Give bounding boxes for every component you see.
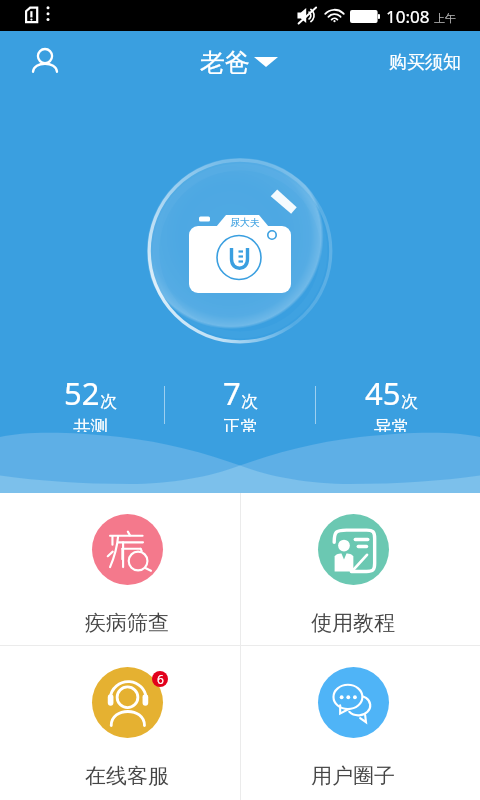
button[interactable]: 疾病筛查 — [67, 496, 187, 646]
staticText: 次 — [401, 391, 418, 412]
button[interactable]: 使用教程 — [293, 496, 413, 646]
staticText: 共测 — [73, 416, 108, 432]
staticText: 异常 — [374, 416, 409, 432]
staticText: 10:08 — [386, 5, 430, 28]
staticText: 老爸 — [200, 47, 250, 78]
button[interactable]: Start measurement — [147, 158, 333, 344]
staticText: 7 — [223, 372, 241, 414]
staticText: 次 — [100, 391, 117, 412]
staticText: 在线客服 — [85, 763, 169, 789]
button[interactable]: 用户圈子 — [293, 649, 413, 799]
staticText: 购买须知 — [389, 51, 461, 74]
staticText: 52 — [64, 372, 100, 414]
button[interactable]: 老爸 — [200, 44, 278, 80]
staticText: 次 — [241, 391, 258, 412]
button[interactable]: 6 — [67, 649, 187, 799]
button[interactable]: 购买须知 — [381, 46, 469, 79]
staticText: 上午 — [434, 11, 456, 25]
staticText: 用户圈子 — [311, 763, 395, 789]
staticText: 正常 — [223, 416, 258, 432]
staticText: 疾病筛查 — [85, 610, 169, 636]
staticText: 尿大夫 — [230, 216, 260, 229]
staticText: 6 — [157, 671, 164, 687]
staticText: 使用教程 — [311, 610, 395, 636]
staticText: 45 — [365, 372, 401, 414]
button[interactable]: Profile — [18, 37, 71, 84]
